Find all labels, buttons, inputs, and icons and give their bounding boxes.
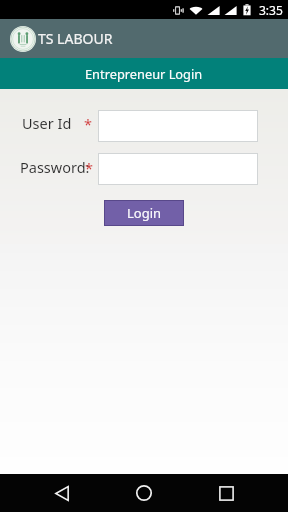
staticText: * xyxy=(84,114,92,134)
button[interactable]: Home xyxy=(124,474,164,512)
staticText: Entrepreneur Login xyxy=(85,65,203,82)
staticText: * xyxy=(85,158,93,178)
staticText: Login xyxy=(127,204,162,222)
button[interactable]: Login xyxy=(105,201,183,225)
staticText: 3:35 xyxy=(259,2,283,18)
staticText: TS LABOUR xyxy=(38,29,113,48)
button[interactable]: Recent apps xyxy=(206,474,246,512)
staticText: Password: xyxy=(20,157,90,177)
staticText: User Id xyxy=(22,113,72,133)
button[interactable]: Back xyxy=(42,474,82,512)
